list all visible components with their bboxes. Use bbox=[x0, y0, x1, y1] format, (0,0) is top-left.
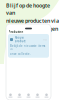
staticText: Producten bbox=[8, 30, 23, 34]
staticText: Blijf op de hoogte van bbox=[6, 2, 50, 16]
staticText: onze pushmeldingen bbox=[6, 25, 58, 32]
staticText: Bekijk de nieuwste items in bbox=[10, 44, 45, 51]
staticText: nieuwe producten via bbox=[6, 17, 59, 24]
staticText: nu bbox=[43, 38, 47, 41]
staticText: onze collectie. bbox=[10, 52, 31, 56]
staticText: Nieuw product bbox=[14, 36, 25, 43]
